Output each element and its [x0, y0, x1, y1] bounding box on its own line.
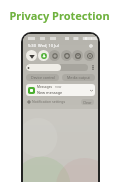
button[interactable]: Brightness slider: [26, 64, 88, 71]
button[interactable]: More options: [90, 64, 95, 71]
button[interactable]: Quick setting 4: [61, 50, 72, 61]
button[interactable]: Quick setting 1: [26, 50, 37, 61]
button[interactable]: Quick setting 5: [72, 50, 83, 61]
button[interactable]: Clear: [81, 99, 94, 105]
staticText: 5:30 Wed, 10 Jul: [28, 43, 59, 48]
button[interactable]: Messages: [26, 84, 95, 96]
staticText: Media output: [67, 75, 90, 80]
button[interactable]: Settings: [88, 43, 93, 48]
staticText: Privacy Protection: [9, 8, 110, 23]
staticText: now: [55, 85, 62, 89]
button[interactable]: Quick setting 6: [84, 50, 95, 61]
staticText: Messages: [37, 85, 53, 89]
button[interactable]: Device control: [26, 74, 59, 81]
button[interactable]: Notification settings: [27, 99, 66, 104]
button[interactable]: Expand: [89, 88, 93, 92]
staticText: Clear: [83, 100, 92, 105]
staticText: Device control: [31, 75, 55, 80]
button[interactable]: Media output: [62, 74, 95, 81]
staticText: Notification settings: [32, 99, 66, 104]
button[interactable]: Quick setting 3: [49, 50, 60, 61]
button[interactable]: Quick setting 2: [38, 50, 49, 61]
staticText: New message: [37, 90, 63, 95]
